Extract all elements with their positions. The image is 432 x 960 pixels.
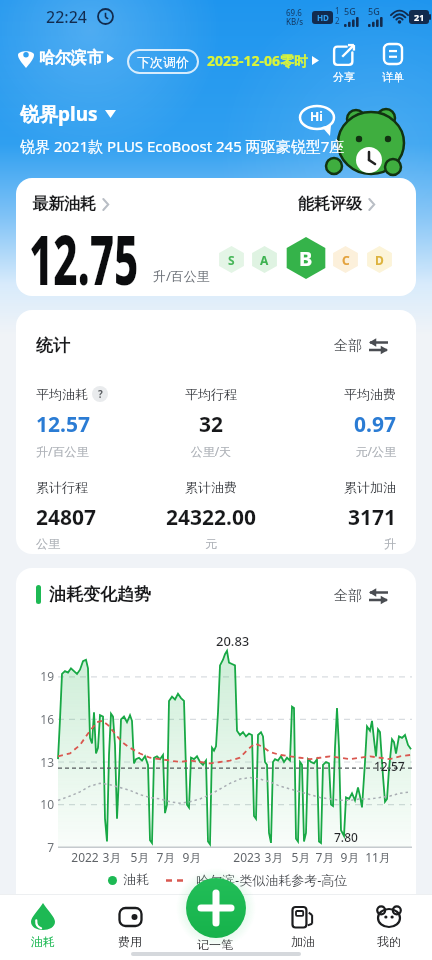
button[interactable]: 费用 [98, 903, 162, 960]
staticText: 24807 [36, 503, 156, 532]
staticText: 21 [414, 11, 425, 23]
staticText: 2 [335, 15, 340, 26]
staticText: 元/公里 [276, 443, 396, 459]
staticText: HD [317, 12, 329, 23]
staticText: 累计加油 [344, 479, 396, 495]
staticText: 全部 [334, 337, 362, 355]
staticText: 分享 [333, 70, 355, 84]
staticText: 0.97 [276, 410, 396, 439]
staticText: 统计 [36, 335, 70, 356]
staticText: 下次调价 [137, 54, 189, 70]
staticText: 2023 [229, 849, 265, 865]
staticText: 5月 [283, 849, 319, 865]
staticText: KB/s [286, 16, 304, 27]
staticText: 油耗变化趋势 [49, 584, 151, 605]
staticText: 5G [368, 5, 380, 17]
button[interactable]: 下次调价 [127, 49, 199, 74]
staticText: 升/百公里 [36, 443, 156, 459]
staticText: 平均行程 [185, 386, 237, 402]
button[interactable]: 哈尔滨市 [18, 48, 114, 68]
staticText: 2023-12-06零时 [207, 51, 309, 70]
staticText: 16 [32, 711, 54, 727]
staticText: A [260, 252, 269, 268]
staticText: 19 [32, 668, 54, 684]
staticText: 最新油耗 [32, 194, 96, 214]
staticText: 平均油费 [344, 386, 396, 402]
staticText: 7月 [148, 849, 184, 865]
staticText: 7 [32, 839, 54, 855]
staticText: 22:24 [46, 6, 87, 28]
staticText: 元 [151, 536, 271, 551]
staticText: 升/百公里 [153, 267, 210, 285]
staticText: 平均油耗 [36, 386, 88, 402]
staticText: 69.6 [286, 7, 302, 18]
staticText: 加油 [291, 934, 315, 949]
staticText: 12.57 [374, 758, 405, 774]
staticText: 1 [335, 5, 340, 16]
staticText: 13 [32, 754, 54, 770]
staticText: 5月 [122, 849, 158, 865]
staticText: 7月 [307, 849, 343, 865]
staticText: 油耗 [31, 934, 55, 949]
staticText: 哈尔滨-类似油耗参考-高位 [196, 871, 348, 889]
staticText: 20.83 [216, 632, 250, 650]
staticText: 哈尔滨市 [39, 48, 103, 68]
staticText: 公里 [36, 536, 156, 551]
button[interactable]: 分享 [327, 42, 361, 86]
staticText: ? [98, 387, 103, 401]
button[interactable] [186, 878, 246, 938]
staticText: 油耗 [123, 871, 149, 887]
button[interactable]: 加油 [271, 903, 335, 960]
staticText: C [342, 252, 350, 268]
staticText: 我的 [377, 934, 401, 949]
button[interactable]: 全部 [334, 587, 388, 605]
staticText: 公里/天 [151, 443, 271, 459]
staticText: 3月 [94, 849, 130, 865]
staticText: D [375, 252, 384, 268]
button[interactable]: 油耗 [11, 903, 75, 960]
staticText: B [299, 245, 313, 272]
staticText: 12.57 [36, 410, 156, 439]
staticText: 2022 [67, 849, 103, 865]
staticText: 7.80 [334, 829, 358, 845]
staticText: 3月 [256, 849, 292, 865]
staticText: 能耗评级 [298, 194, 362, 214]
staticText: 32 [151, 410, 271, 439]
button[interactable]: 锐界plus [20, 101, 116, 127]
staticText: 记一笔 [197, 937, 233, 952]
button[interactable]: 2023-12-06零时 [207, 51, 319, 70]
button[interactable]: 最新油耗 [32, 194, 111, 214]
button[interactable]: 能耗评级 [298, 194, 377, 214]
button[interactable]: 详单 [376, 42, 410, 86]
staticText: 9月 [174, 849, 210, 865]
button[interactable]: 全部 [334, 337, 388, 355]
staticText: 锐界plus [20, 101, 98, 127]
staticText: 24322.00 [151, 503, 271, 532]
staticText: 9月 [332, 849, 368, 865]
staticText: Hi [310, 108, 323, 124]
staticText: 3171 [276, 503, 396, 532]
staticText: 锐界 2021款 PLUS EcoBoost 245 两驱豪锐型7座 [20, 136, 345, 156]
staticText: 11月 [360, 849, 396, 865]
staticText: 全部 [334, 587, 362, 605]
button[interactable]: 我的 [357, 903, 421, 960]
staticText: S [228, 252, 235, 268]
staticText: 累计油费 [185, 479, 237, 495]
staticText: 累计行程 [36, 479, 88, 495]
staticText: 10 [32, 796, 54, 812]
staticText: 详单 [382, 70, 404, 84]
staticText: 升 [276, 536, 396, 551]
staticText: 12.75 [29, 212, 139, 296]
staticText: 费用 [118, 934, 142, 949]
staticText: 5G [344, 5, 356, 17]
